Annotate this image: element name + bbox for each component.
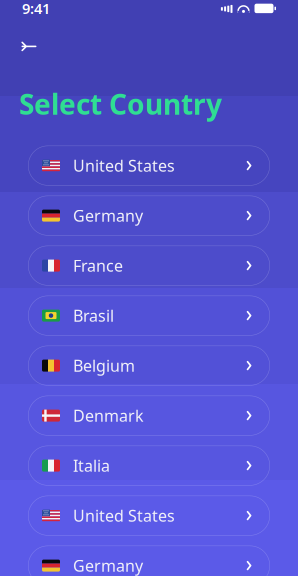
staticText: United States: [73, 155, 175, 176]
staticText: Brasil: [73, 305, 114, 326]
staticText: France: [73, 255, 123, 276]
button[interactable]: Back: [12, 32, 46, 60]
staticText: United States: [73, 505, 175, 526]
staticText: Germany: [73, 555, 143, 576]
button[interactable]: Italia: [28, 446, 270, 486]
staticText: Italia: [73, 455, 110, 476]
staticText: Denmark: [73, 405, 144, 426]
staticText: 9:41: [22, 0, 50, 18]
button[interactable]: Belgium: [28, 346, 270, 386]
button[interactable]: Brasil: [28, 296, 270, 336]
button[interactable]: United States: [28, 496, 270, 536]
button[interactable]: United States: [28, 146, 270, 186]
button[interactable]: France: [28, 246, 270, 286]
staticText: Select Country: [19, 85, 222, 123]
staticText: Germany: [73, 205, 143, 226]
button[interactable]: Germany: [28, 196, 270, 236]
button[interactable]: Germany: [28, 546, 270, 576]
staticText: Belgium: [73, 355, 135, 376]
button[interactable]: Denmark: [28, 396, 270, 436]
